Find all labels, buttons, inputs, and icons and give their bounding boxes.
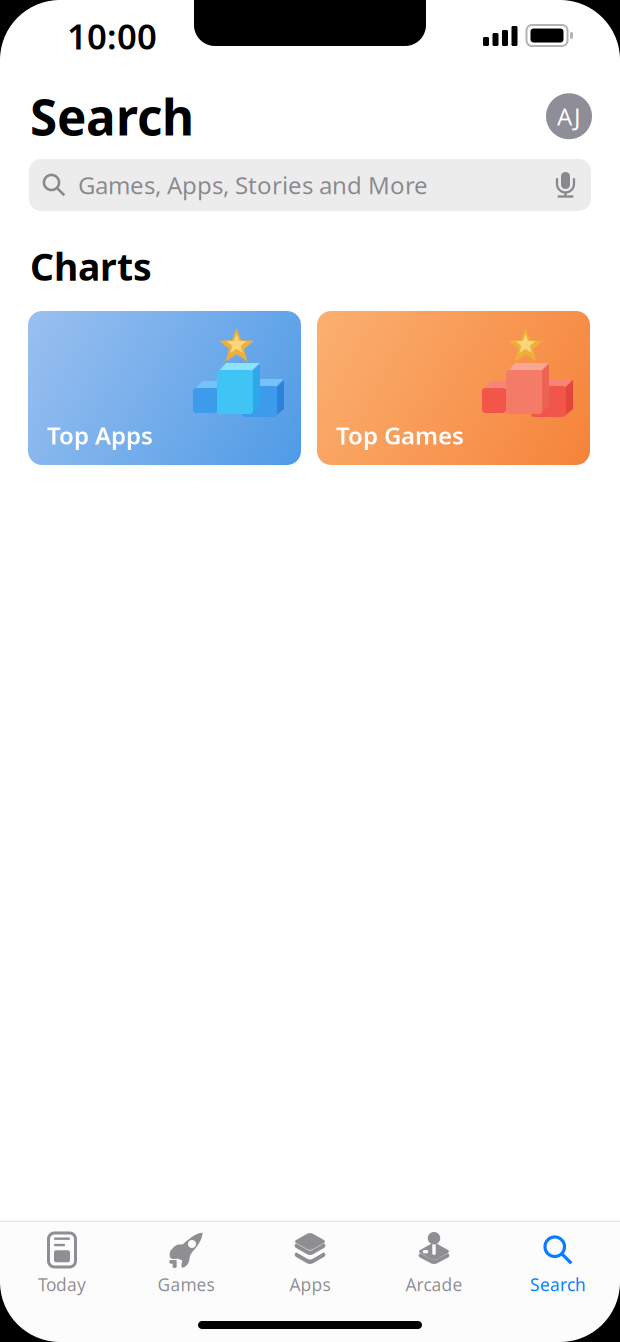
button[interactable]: Top Games (317, 311, 590, 465)
button[interactable]: Account (546, 93, 592, 139)
button[interactable]: Games (124, 1222, 248, 1298)
staticText: Top Apps (47, 419, 153, 451)
button[interactable]: Search (496, 1222, 620, 1298)
staticText: 10:00 (67, 13, 157, 59)
staticText: AJ (557, 100, 581, 132)
button[interactable]: Arcade (372, 1222, 496, 1298)
button[interactable]: Games, Apps, Stories and More (29, 159, 591, 211)
staticText: Charts (30, 241, 152, 291)
staticText: Search (530, 1273, 586, 1296)
staticText: Apps (289, 1273, 330, 1296)
staticText: Arcade (405, 1273, 462, 1296)
staticText: Games, Apps, Stories and More (78, 169, 428, 201)
staticText: Top Games (336, 419, 464, 451)
staticText: Games (157, 1273, 214, 1296)
button[interactable]: Top Apps (28, 311, 301, 465)
staticText: Today (38, 1273, 86, 1296)
staticText: Search (30, 83, 194, 149)
button[interactable]: Apps (248, 1222, 372, 1298)
button[interactable]: Today (0, 1222, 124, 1298)
